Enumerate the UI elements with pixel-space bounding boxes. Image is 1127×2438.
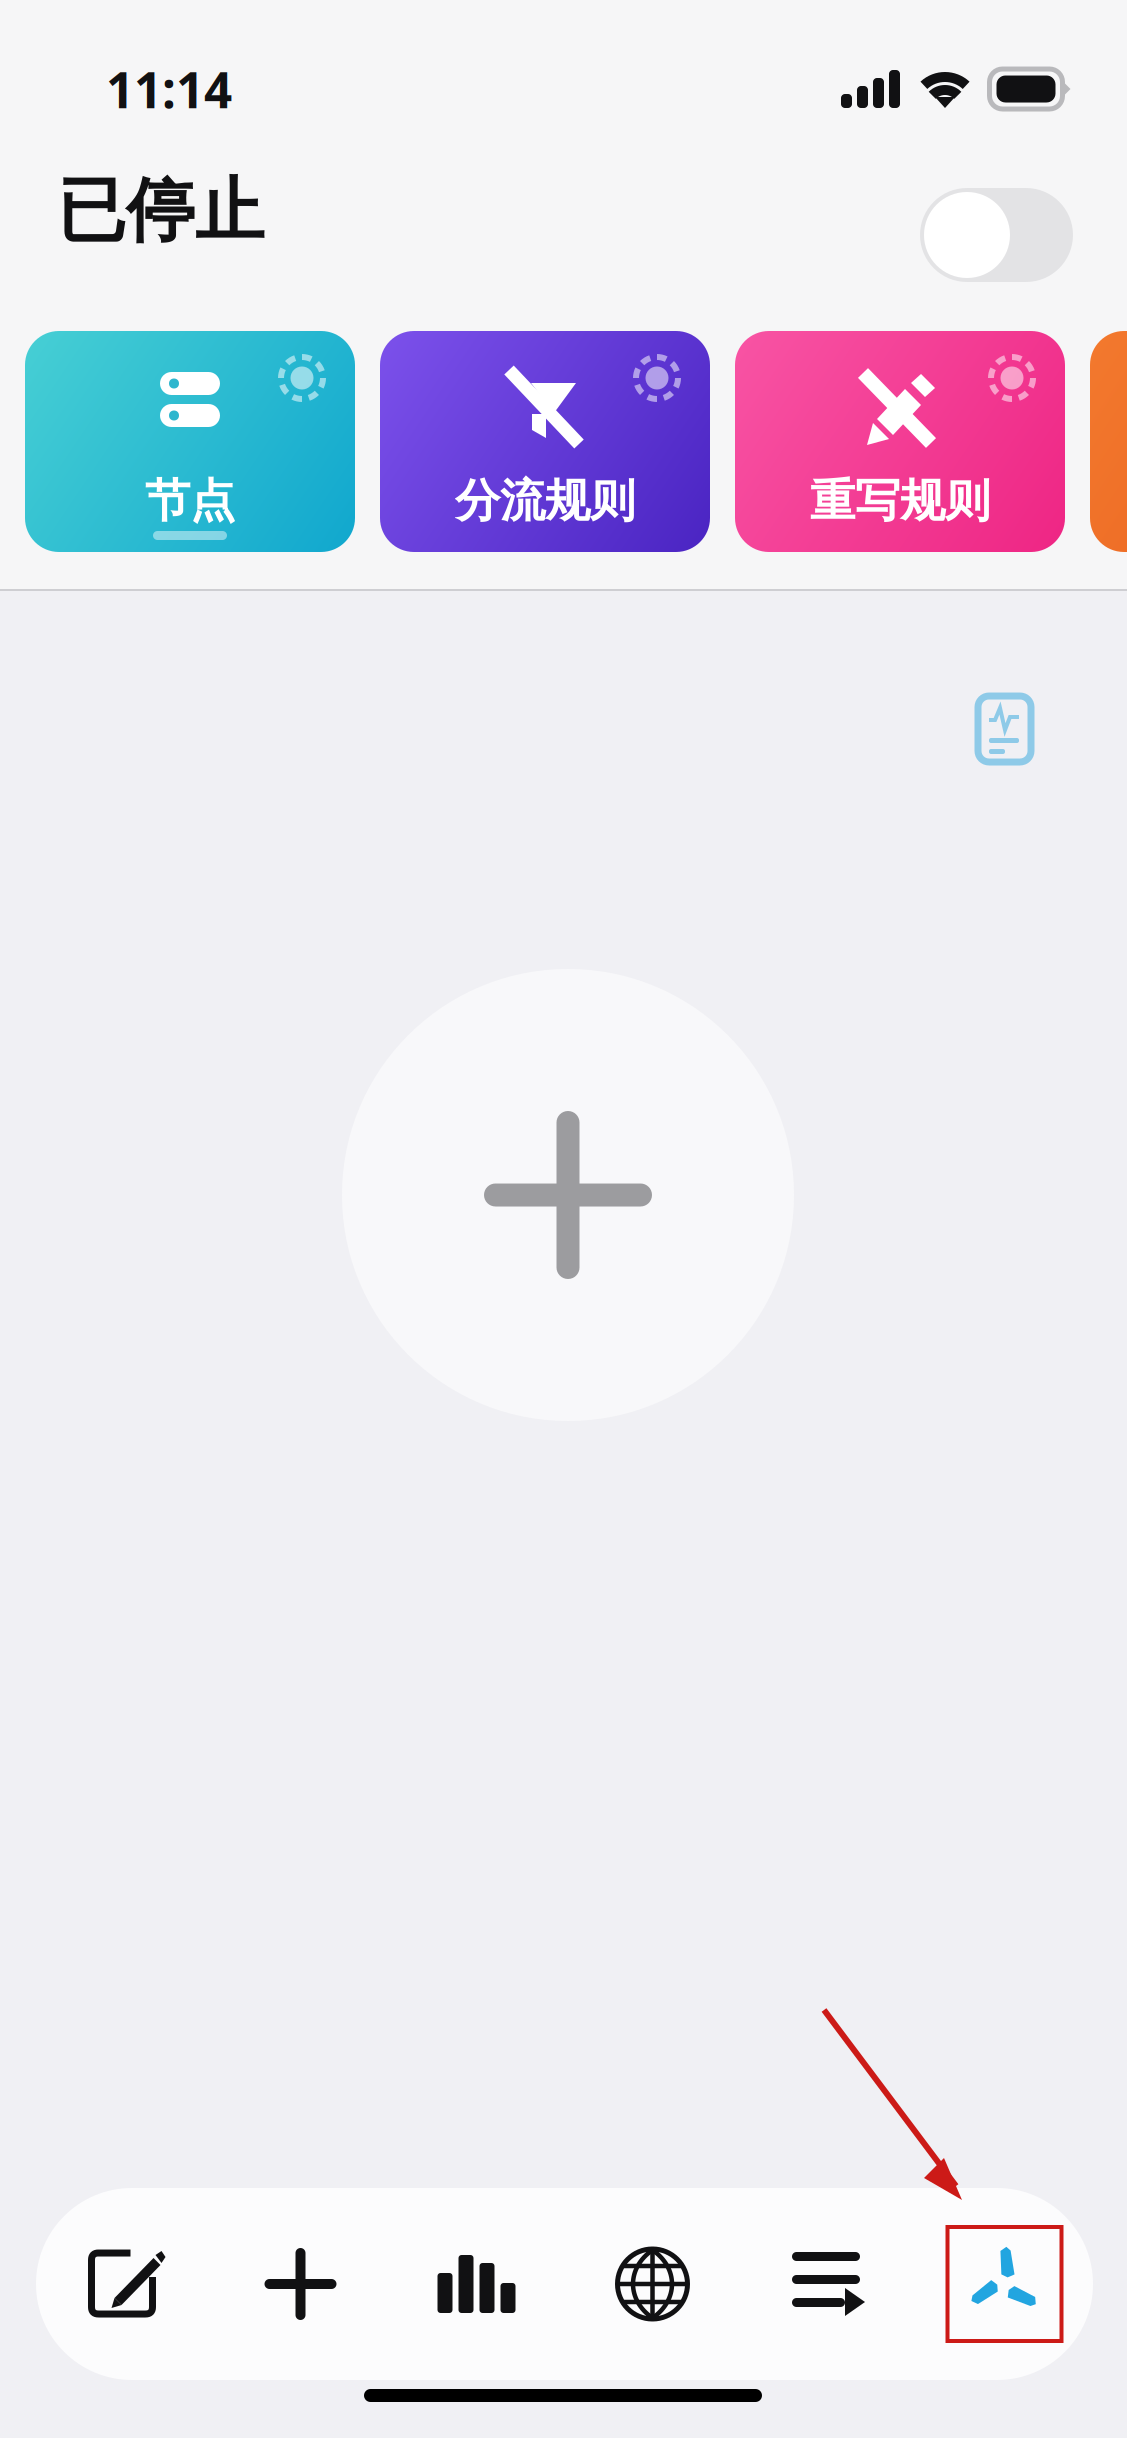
button[interactable]: Add <box>342 969 794 1421</box>
button[interactable]: Add <box>212 2188 388 2380</box>
staticText: 重写规则 <box>810 473 990 529</box>
button[interactable]: Statistics <box>388 2188 564 2380</box>
staticText: 已停止 <box>57 168 264 254</box>
button[interactable]: 节点 <box>25 331 355 552</box>
button[interactable] <box>1090 331 1127 552</box>
button[interactable]: Enable <box>920 188 1073 282</box>
button[interactable]: Logs <box>978 696 1031 762</box>
button[interactable]: 分流规则 <box>380 331 710 552</box>
staticText: 分流规则 <box>455 473 635 529</box>
button[interactable]: Requests <box>740 2188 916 2380</box>
button[interactable]: Profile <box>916 2188 1092 2380</box>
button[interactable]: Network <box>564 2188 740 2380</box>
staticText: 11:14 <box>106 56 232 122</box>
button[interactable]: Compose <box>36 2188 212 2380</box>
button[interactable]: 重写规则 <box>735 331 1065 552</box>
staticText: 节点 <box>145 473 235 529</box>
